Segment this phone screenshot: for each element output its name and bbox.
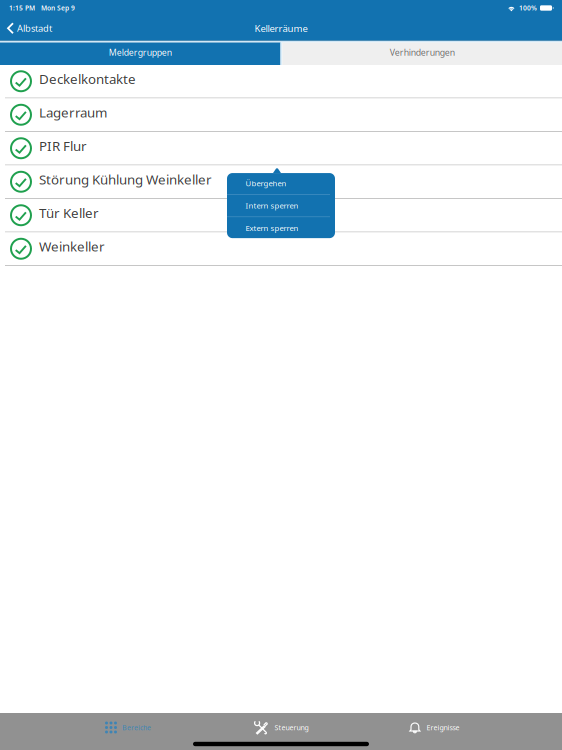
button[interactable]: Weinkeller xyxy=(0,232,562,265)
staticText: Störung Kühlung Weinkeller xyxy=(39,170,212,188)
staticText: 1:15 PM xyxy=(9,3,35,13)
button[interactable]: Tür Keller xyxy=(0,199,562,231)
staticText: Albstadt xyxy=(17,22,52,35)
staticText: Verhinderungen xyxy=(390,46,455,58)
staticText: Tür Keller xyxy=(39,204,99,222)
staticText: Intern sperren xyxy=(245,200,298,211)
button[interactable]: PIR Flur xyxy=(0,132,562,164)
staticText: Übergehen xyxy=(245,178,286,188)
staticText: 100% xyxy=(519,3,537,13)
button[interactable]: Lagerraum xyxy=(0,98,562,131)
staticText: Weinkeller xyxy=(39,237,105,255)
button[interactable]: Übergehen xyxy=(227,172,335,194)
button[interactable]: Deckelkontakte xyxy=(0,65,562,97)
button[interactable]: Extern sperren xyxy=(227,217,335,239)
button[interactable]: Ereignisse xyxy=(357,713,510,742)
staticText: Extern sperren xyxy=(245,223,298,233)
staticText: Deckelkontakte xyxy=(39,70,136,88)
button[interactable]: Intern sperren xyxy=(227,195,335,216)
button[interactable]: Steuerung xyxy=(204,713,357,742)
staticText: PIR Flur xyxy=(39,137,87,155)
staticText: Kellerräume xyxy=(254,22,307,35)
button[interactable]: Bereiche xyxy=(51,713,204,742)
staticText: Steuerung xyxy=(274,723,308,732)
staticText: Lagerraum xyxy=(39,103,107,121)
button[interactable]: Verhinderungen xyxy=(282,42,562,65)
button[interactable]: Meldergruppen xyxy=(0,42,280,65)
button[interactable]: Störung Kühlung Weinkeller xyxy=(0,165,562,198)
staticText: Mon Sep 9 xyxy=(41,3,75,13)
button[interactable]: Albstadt xyxy=(0,16,60,40)
staticText: Bereiche xyxy=(122,723,151,732)
staticText: Ereignisse xyxy=(426,723,459,732)
staticText: Meldergruppen xyxy=(109,46,172,58)
